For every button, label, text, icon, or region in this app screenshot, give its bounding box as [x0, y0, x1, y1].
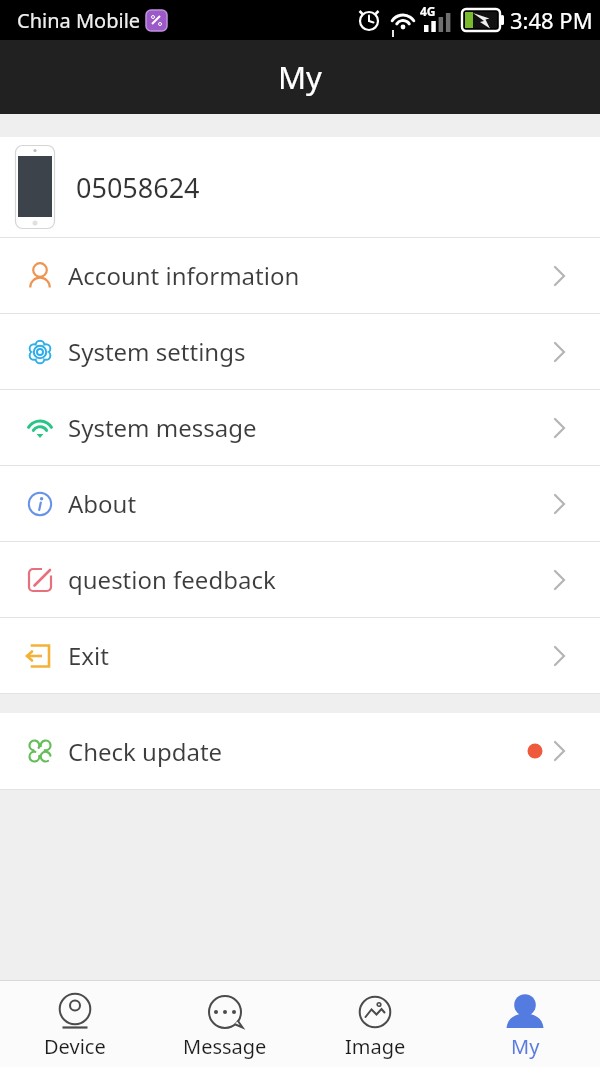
staticText: China Mobile [17, 7, 141, 34]
button[interactable]: Device [0, 981, 150, 1067]
button[interactable]: question feedback [0, 542, 600, 617]
staticText: Account information [68, 259, 300, 292]
staticText: Message [183, 1033, 267, 1060]
staticText: Exit [68, 639, 109, 672]
staticText: System message [68, 411, 257, 444]
staticText: My [511, 1033, 540, 1060]
staticText: question feedback [68, 563, 276, 596]
staticText: Check update [68, 735, 223, 768]
button[interactable]: Check update [0, 713, 600, 789]
button[interactable]: Image [300, 981, 450, 1067]
button[interactable]: System settings [0, 314, 600, 389]
staticText: About [68, 487, 137, 520]
staticText: 4G [420, 3, 436, 19]
staticText: 3:48 PM [510, 5, 593, 35]
staticText: 05058624 [76, 169, 200, 206]
button[interactable]: About [0, 466, 600, 541]
button[interactable]: Message [150, 981, 300, 1067]
button[interactable]: 05058624 [0, 137, 600, 237]
staticText: System settings [68, 335, 246, 368]
button[interactable]: System message [0, 390, 600, 465]
staticText: Device [44, 1033, 106, 1060]
button[interactable]: Account information [0, 238, 600, 313]
staticText: My [278, 56, 322, 98]
button[interactable]: My [450, 981, 600, 1067]
button[interactable]: Exit [0, 618, 600, 693]
staticText: Image [345, 1033, 406, 1060]
